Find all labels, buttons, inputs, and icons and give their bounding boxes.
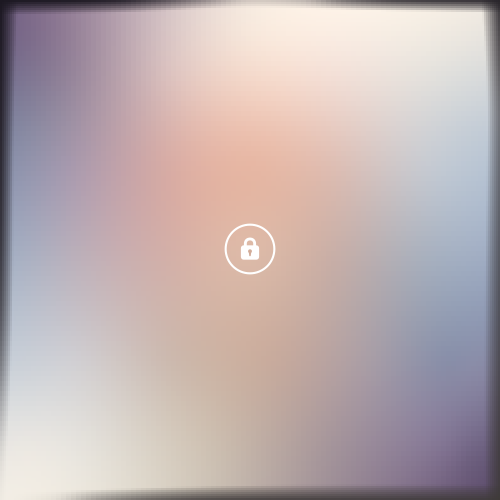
button[interactable]: Unlock [0,0,500,500]
